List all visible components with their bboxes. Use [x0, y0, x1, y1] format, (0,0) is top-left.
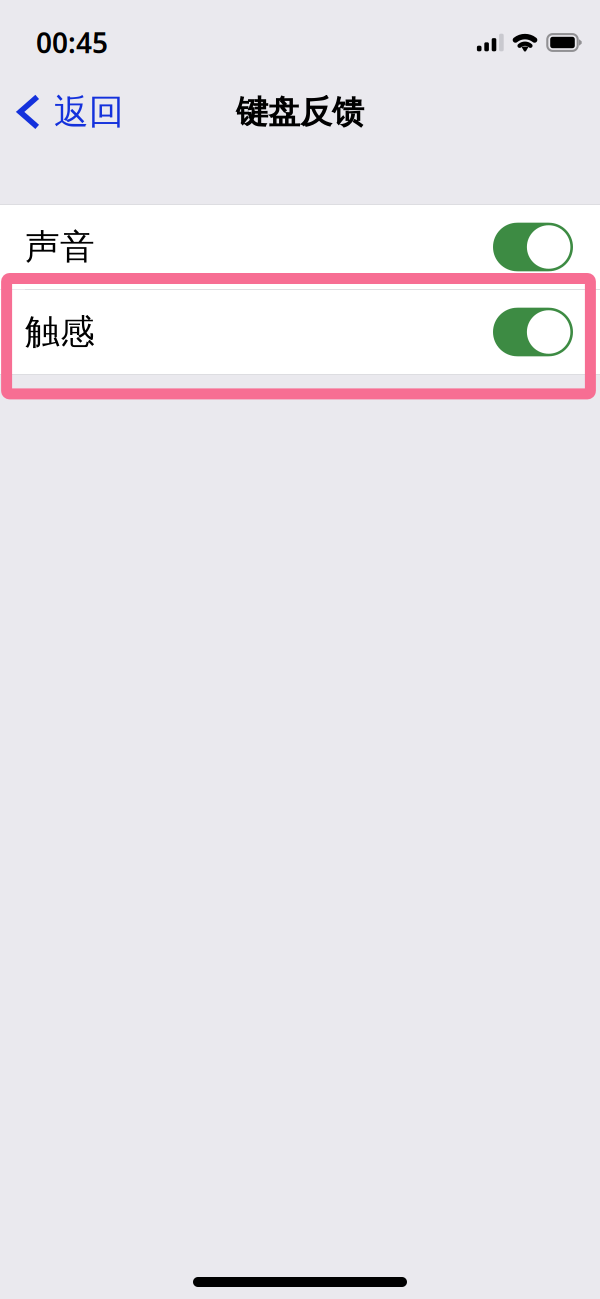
button[interactable]: 触感 [0, 290, 600, 374]
staticText: 键盘反馈 [236, 92, 364, 132]
button[interactable]: 声音 [0, 205, 600, 289]
staticText: 触感 [25, 311, 95, 353]
button[interactable]: 返回 [0, 86, 124, 138]
staticText: 00:45 [36, 24, 108, 61]
staticText: 声音 [25, 226, 95, 268]
staticText: 返回 [54, 91, 124, 133]
